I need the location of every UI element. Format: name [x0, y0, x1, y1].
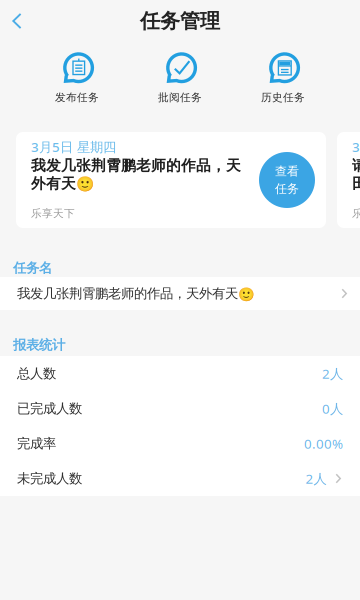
staticText: 批阅任务 — [158, 91, 202, 104]
staticText: 未完成人数 — [17, 470, 82, 487]
staticText: 2人 — [322, 365, 343, 382]
staticText: 总人数 — [17, 365, 56, 382]
staticText: 2人 — [305, 470, 326, 487]
staticText: 查看 — [275, 164, 299, 178]
staticText: 历史任务 — [261, 91, 305, 104]
button[interactable]: 未完成人数 — [0, 461, 360, 496]
staticText: 乐享天下 — [352, 207, 360, 220]
button[interactable]: 发布任务 — [25, 50, 128, 106]
staticText: 请同学们认真完成本次 — [352, 157, 360, 175]
staticText: 我发几张荆霄鹏老师的作品，天外有天🙂 — [17, 285, 255, 302]
button[interactable]: 已完成人数 — [0, 391, 360, 426]
staticText: 完成率 — [17, 435, 56, 452]
staticText: 任务 — [275, 181, 299, 196]
button[interactable]: 批阅任务 — [128, 50, 231, 106]
staticText: 任务名 — [13, 260, 52, 276]
staticText: 乐享天下 — [31, 207, 75, 220]
staticText: 报表统计 — [13, 337, 65, 353]
button[interactable]: Back — [0, 0, 40, 42]
button[interactable]: 我发几张荆霄鹏老师的作品，天外有天🙂 — [0, 277, 360, 310]
staticText: 0人 — [322, 400, 343, 417]
button[interactable]: 查看 — [259, 152, 315, 208]
staticText: 田字格书写练习 — [352, 175, 360, 193]
staticText: 任务管理 — [140, 9, 220, 33]
button[interactable]: 总人数 — [0, 356, 360, 391]
staticText: 我发几张荆霄鹏老师的作品，天 — [31, 157, 241, 175]
button[interactable]: 完成率 — [0, 426, 360, 461]
button[interactable]: 历史任务 — [231, 50, 334, 106]
staticText: 外有天🙂 — [31, 175, 94, 193]
staticText: 已完成人数 — [17, 400, 82, 417]
staticText: 发布任务 — [55, 91, 99, 104]
staticText: 3月5日 星期四 — [31, 138, 116, 156]
staticText: 0.00% — [304, 435, 343, 452]
staticText: 3月5日 星期四 — [352, 138, 360, 156]
